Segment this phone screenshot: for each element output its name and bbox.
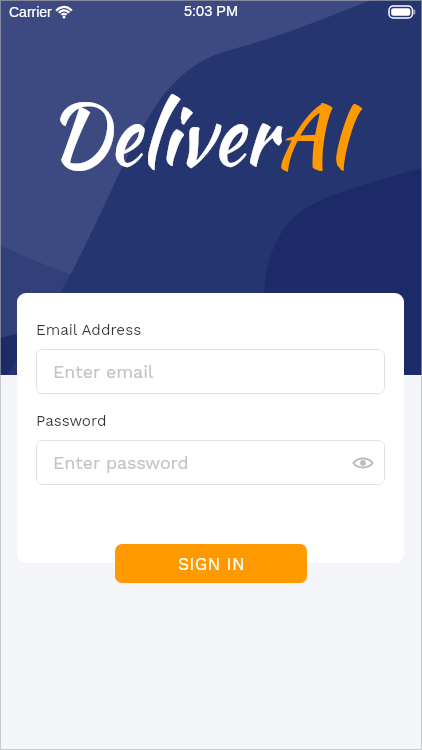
button[interactable]: SIGN IN	[115, 544, 307, 583]
other: Show password	[353, 453, 373, 473]
staticText: 5:03 PM	[184, 3, 238, 19]
staticText: AI	[276, 73, 351, 195]
button[interactable]: Enter password	[36, 440, 385, 485]
staticText: Password	[36, 412, 107, 430]
staticText: Enter email	[53, 361, 154, 382]
staticText: Deliver	[48, 73, 276, 195]
staticText: SIGN IN	[178, 554, 245, 574]
staticText: Email Address	[36, 321, 142, 339]
staticText: Carrier	[9, 4, 52, 20]
staticText: Enter password	[53, 452, 189, 473]
button[interactable]: Enter email	[36, 349, 385, 394]
